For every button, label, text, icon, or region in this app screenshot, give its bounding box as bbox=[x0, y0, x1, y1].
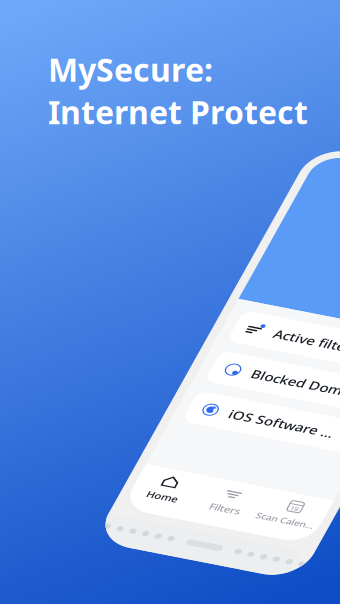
staticText: MySecure: bbox=[48, 48, 213, 90]
staticText: Internet Protect bbox=[48, 90, 308, 133]
